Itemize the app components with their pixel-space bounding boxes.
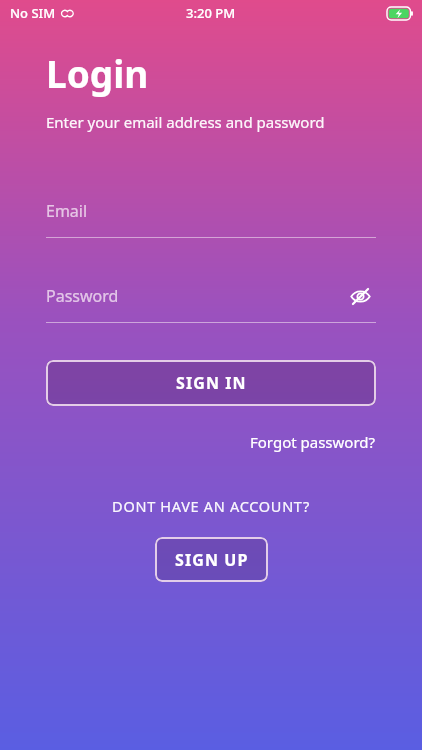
staticText: SIGN UP [175,549,249,571]
button[interactable]: Password [46,275,376,323]
staticText: SIGN IN [176,372,247,394]
staticText: No SIM [10,4,56,22]
button[interactable]: Forgot password? [250,428,376,456]
staticText: Login [46,48,149,98]
staticText: Enter your email address and password [46,112,325,132]
button[interactable]: SIGN UP [155,537,268,582]
staticText: 3:20 PM [186,4,236,22]
button[interactable]: SIGN IN [46,360,376,406]
button[interactable]: Show password [346,282,374,310]
button[interactable]: Email [46,190,376,238]
staticText: Email [46,200,88,222]
staticText: Password [46,285,119,307]
staticText: DONT HAVE AN ACCOUNT? [0,496,422,516]
